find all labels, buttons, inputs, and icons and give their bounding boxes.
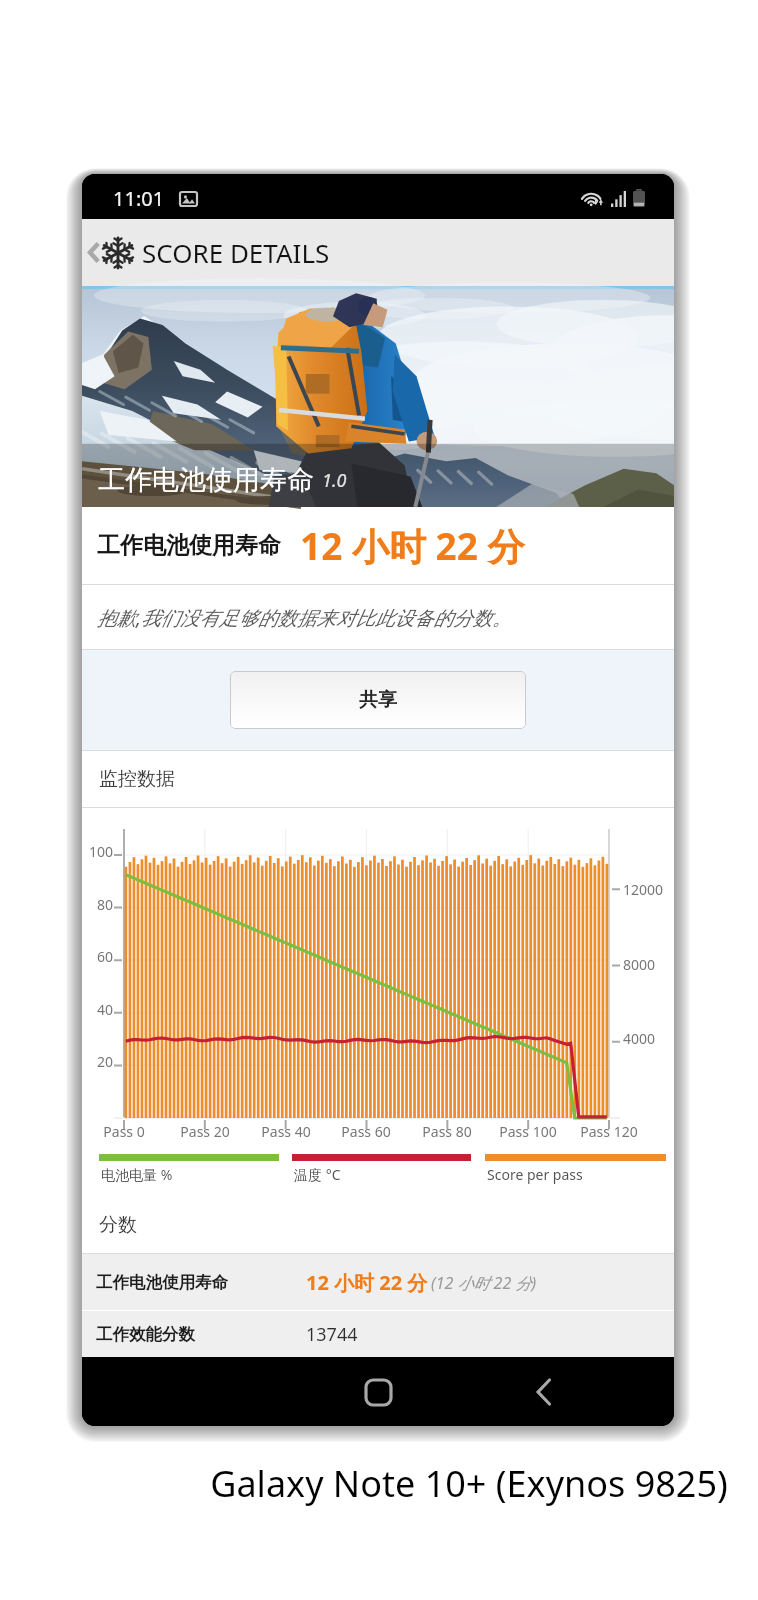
staticText: Pass 40 [236, 1122, 336, 1141]
staticText: 4000 [623, 1029, 656, 1048]
staticText: Pass 80 [397, 1122, 497, 1141]
staticText: 工作电池使用寿命 [97, 531, 281, 560]
staticText: SCORE DETAILS [142, 235, 330, 270]
staticText: (12 小时 22 分) [431, 1272, 537, 1294]
staticText: 80 [82, 895, 113, 914]
staticText: 12 小时 22 分 [300, 520, 525, 571]
button[interactable]: Home [352, 1366, 404, 1418]
staticText: 60 [82, 947, 113, 966]
staticText: 共享 [359, 688, 397, 712]
staticText: 1.0 [322, 468, 347, 493]
staticText: 20 [82, 1052, 113, 1071]
staticText: Score per pass [487, 1165, 583, 1184]
staticText: 13744 [306, 1322, 358, 1347]
button[interactable]: 工作效能分数 [82, 1311, 674, 1357]
button[interactable]: 工作电池使用寿命 [82, 1254, 674, 1310]
staticText: 监控数据 [99, 767, 175, 791]
button[interactable]: Back to score list [82, 235, 340, 270]
staticText: 分数 [99, 1213, 137, 1237]
staticText: Pass 60 [316, 1122, 416, 1141]
staticText: Pass 0 [82, 1122, 174, 1141]
staticText: 40 [82, 1000, 113, 1019]
button[interactable]: Back [517, 1366, 569, 1418]
button[interactable]: 共享 [230, 671, 526, 729]
staticText: 100 [82, 842, 113, 861]
staticText: 工作电池使用寿命 [98, 463, 314, 497]
staticText: Pass 20 [155, 1122, 255, 1141]
staticText: Pass 120 [559, 1122, 659, 1141]
staticText: 工作电池使用寿命 [96, 1272, 228, 1293]
staticText: 12 小时 22 分 [306, 1269, 428, 1296]
staticText: 11:01 [113, 185, 165, 212]
staticText: 抱歉,我们没有足够的数据来对比此设备的分数。 [97, 604, 512, 631]
staticText: 温度 °C [294, 1165, 341, 1184]
staticText: 8000 [623, 955, 656, 974]
staticText: 工作效能分数 [96, 1324, 195, 1345]
staticText: 12000 [623, 880, 664, 899]
staticText: Pass 100 [478, 1122, 578, 1141]
staticText: 电池电量 % [101, 1165, 173, 1184]
staticText: Galaxy Note 10+ (Exynos 9825) [90, 1459, 758, 1508]
